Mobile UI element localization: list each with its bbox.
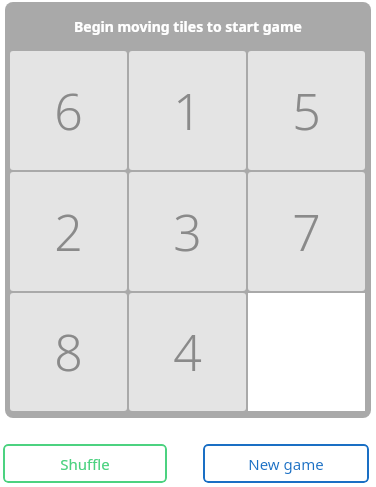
staticText: 8 (54, 318, 83, 386)
staticText: 7 (292, 198, 321, 266)
staticText: Begin moving tiles to start game (74, 17, 302, 36)
staticText: 6 (54, 77, 83, 145)
staticText: 5 (292, 77, 321, 145)
staticText: 2 (54, 198, 83, 266)
staticText: New game (248, 454, 324, 474)
button[interactable]: 6 (10, 51, 127, 170)
button[interactable]: Shuffle (3, 444, 167, 483)
button[interactable]: 7 (248, 172, 365, 291)
button[interactable]: New game (203, 444, 369, 483)
staticText: 3 (173, 198, 202, 266)
staticText: 1 (173, 77, 202, 145)
button[interactable]: 3 (129, 172, 246, 291)
button[interactable]: 1 (129, 51, 246, 170)
staticText: 4 (173, 318, 202, 386)
button[interactable]: 8 (10, 293, 127, 411)
button[interactable]: 5 (248, 51, 365, 170)
staticText: Shuffle (60, 454, 110, 474)
button[interactable]: 4 (129, 293, 246, 411)
button[interactable]: 2 (10, 172, 127, 291)
